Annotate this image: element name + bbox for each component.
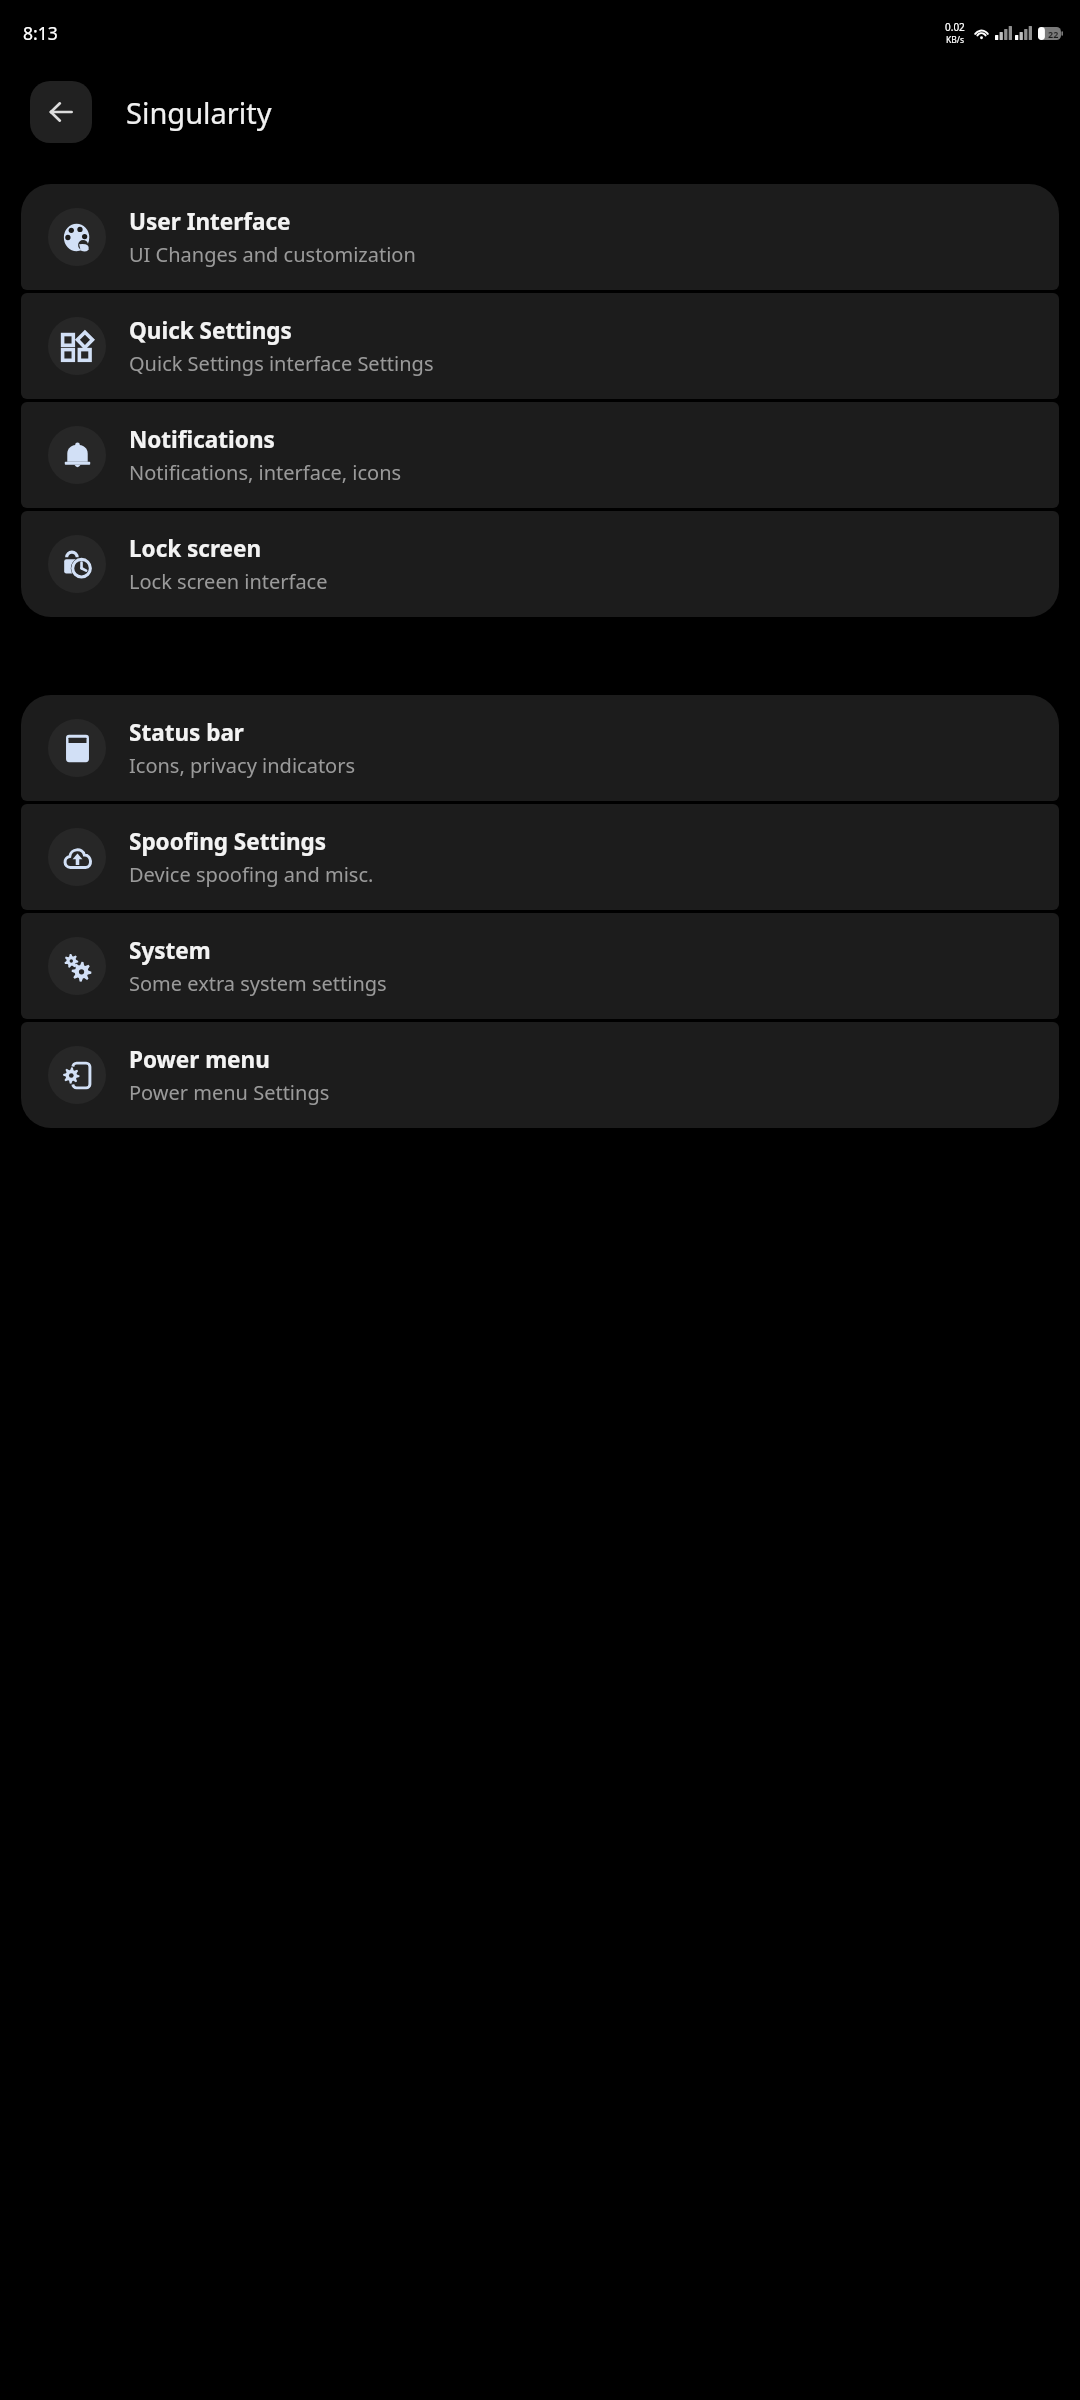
- staticText: Status bar: [129, 717, 244, 748]
- staticText: Quick Settings: [129, 315, 292, 346]
- button[interactable]: User Interface: [21, 184, 1059, 290]
- staticText: Quick Settings interface Settings: [129, 350, 434, 377]
- staticText: Lock screen interface: [129, 568, 328, 595]
- staticText: Icons, privacy indicators: [129, 752, 356, 779]
- staticText: 0.02: [945, 20, 965, 34]
- staticText: Some extra system settings: [129, 970, 387, 997]
- button[interactable]: Lock screen: [21, 511, 1059, 617]
- staticText: Power menu: [129, 1044, 270, 1075]
- staticText: User Interface: [129, 206, 291, 237]
- button[interactable]: System: [21, 913, 1059, 1019]
- staticText: Notifications: [129, 424, 275, 455]
- staticText: Notifications, interface, icons: [129, 459, 402, 486]
- staticText: 22: [1048, 28, 1059, 40]
- staticText: KB/s: [946, 34, 965, 46]
- button[interactable]: Quick Settings: [21, 293, 1059, 399]
- staticText: UI Changes and customization: [129, 241, 416, 268]
- staticText: Spoofing Settings: [129, 826, 327, 857]
- staticText: 8:13: [23, 21, 58, 45]
- staticText: Singularity: [126, 93, 272, 132]
- staticText: Device spoofing and misc.: [129, 861, 374, 888]
- button[interactable]: Spoofing Settings: [21, 804, 1059, 910]
- button[interactable]: Notifications: [21, 402, 1059, 508]
- staticText: Lock screen: [129, 533, 262, 564]
- staticText: Power menu Settings: [129, 1079, 330, 1106]
- button[interactable]: Power menu: [21, 1022, 1059, 1128]
- staticText: System: [129, 935, 211, 966]
- button[interactable]: Status bar: [21, 695, 1059, 801]
- button[interactable]: Back: [30, 81, 92, 143]
